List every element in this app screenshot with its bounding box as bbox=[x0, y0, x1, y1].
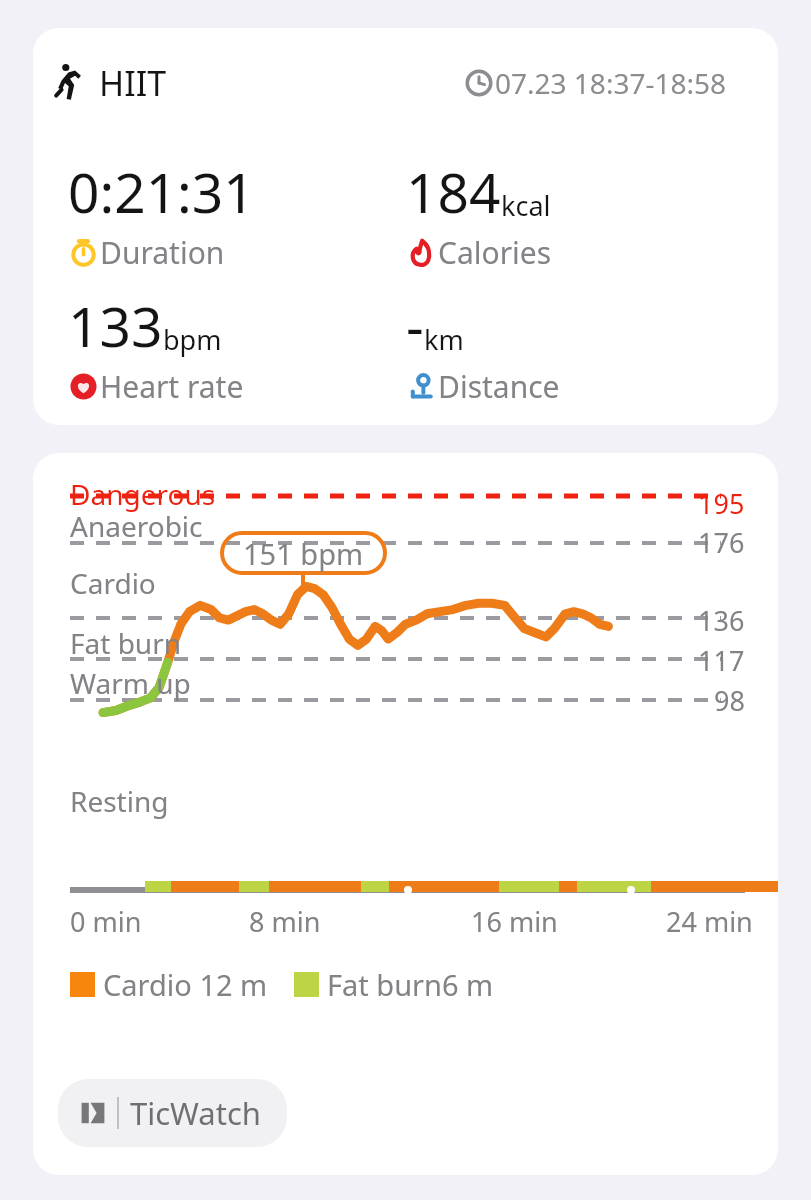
staticText: Fat burn bbox=[70, 624, 182, 662]
staticText: HIIT bbox=[99, 60, 167, 106]
button[interactable]: - bbox=[406, 288, 736, 407]
button[interactable]: 133 bbox=[68, 288, 398, 407]
staticText: 0 min bbox=[70, 903, 142, 940]
staticText: - bbox=[406, 288, 424, 363]
button[interactable]: Fat burn6 m bbox=[294, 965, 494, 1004]
button[interactable]: TicWatch bbox=[58, 1079, 287, 1147]
staticText: 136 bbox=[698, 602, 745, 639]
staticText: TicWatch bbox=[130, 1092, 261, 1134]
button[interactable]: Workout type bbox=[49, 58, 167, 108]
staticText: 151 bpm bbox=[243, 534, 364, 573]
staticText: Duration bbox=[100, 232, 225, 273]
staticText: 8 min bbox=[249, 903, 321, 940]
staticText: Resting bbox=[70, 782, 169, 820]
staticText: 176 bbox=[698, 524, 745, 561]
staticText: 184 bbox=[406, 154, 501, 229]
staticText: 133 bbox=[68, 288, 163, 363]
staticText: 98 bbox=[714, 682, 745, 719]
other: Workout type bbox=[49, 62, 91, 104]
staticText: 117 bbox=[698, 642, 745, 679]
button[interactable]: Cardio 12 m bbox=[70, 965, 268, 1004]
staticText: km bbox=[424, 321, 464, 358]
staticText: 0:21:31 bbox=[68, 154, 255, 229]
staticText: 24 min bbox=[666, 903, 753, 940]
staticText: Dangerous bbox=[70, 475, 216, 513]
staticText: Fat burn6 m bbox=[327, 965, 494, 1004]
staticText: Anaerobic bbox=[70, 507, 203, 545]
staticText: Cardio 12 m bbox=[103, 965, 268, 1004]
staticText: Heart rate bbox=[100, 366, 244, 407]
staticText: Cardio bbox=[70, 564, 156, 602]
staticText: bpm bbox=[163, 321, 222, 358]
staticText: Warm up bbox=[70, 664, 191, 702]
staticText: kcal bbox=[501, 187, 551, 224]
button[interactable]: 0:21:31 bbox=[68, 154, 398, 273]
button[interactable]: 184 bbox=[406, 154, 736, 273]
staticText: 07.23 18:37-18:58 bbox=[495, 64, 727, 102]
staticText: 195 bbox=[698, 485, 745, 522]
staticText: 16 min bbox=[471, 903, 558, 940]
staticText: Calories bbox=[438, 232, 552, 273]
staticText: Distance bbox=[438, 366, 560, 407]
